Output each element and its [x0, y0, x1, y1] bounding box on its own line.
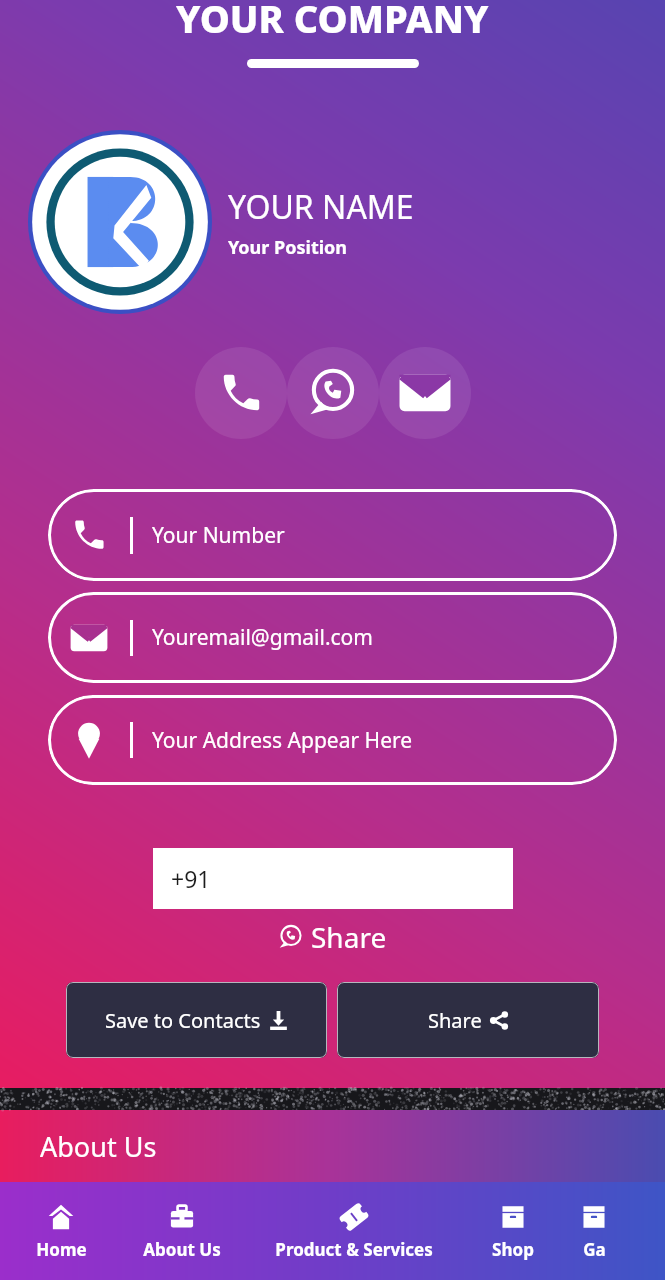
button[interactable]: Email [379, 347, 471, 439]
button[interactable]: WhatsApp [287, 347, 379, 439]
staticText: About Us [40, 1128, 157, 1165]
button[interactable]: Save to Contacts [66, 982, 327, 1058]
button[interactable]: Share [337, 982, 599, 1058]
button[interactable]: Call [195, 347, 287, 439]
button[interactable]: Your Address Appear Here [48, 695, 617, 785]
button[interactable]: Home [6, 1202, 116, 1261]
button[interactable]: Product & Services [248, 1202, 460, 1261]
staticText: YOUR NAME [228, 185, 414, 229]
button[interactable]: About Us [0, 1110, 665, 1182]
staticText: Home [36, 1238, 87, 1261]
staticText: YOUR COMPANY [176, 0, 489, 36]
staticText: Your Position [228, 235, 348, 260]
staticText: Product & Services [275, 1238, 433, 1261]
staticText: About Us [143, 1238, 221, 1261]
button[interactable]: Shop [460, 1202, 566, 1261]
staticText: +91 [171, 863, 211, 894]
button[interactable]: +91 [153, 848, 513, 909]
staticText: Your Address Appear Here [152, 726, 413, 755]
staticText: Youremail@gmail.com [152, 623, 373, 652]
button[interactable]: Share [274, 914, 391, 960]
button[interactable]: Youremail@gmail.com [48, 592, 617, 683]
button[interactable]: About Us [116, 1202, 248, 1261]
staticText: Your Number [152, 521, 285, 550]
staticText: Shop [492, 1238, 534, 1261]
button[interactable]: Ga [566, 1202, 622, 1261]
staticText: Share [311, 918, 387, 956]
button[interactable]: Your Number [48, 489, 617, 581]
staticText: Share [428, 1007, 482, 1034]
staticText: Ga [583, 1238, 606, 1261]
staticText: Save to Contacts [105, 1007, 261, 1034]
